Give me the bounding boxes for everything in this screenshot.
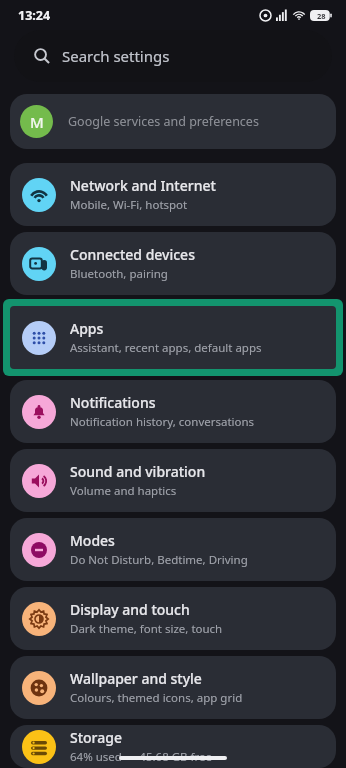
button[interactable]: Apps (10, 306, 336, 369)
staticText: Notification history, conversations (70, 414, 255, 430)
staticText: Sound and vibration (70, 462, 206, 481)
staticText: M (30, 112, 44, 132)
staticText: 28 (317, 11, 326, 21)
button[interactable]: Display and touch (10, 587, 336, 650)
button[interactable]: Modes (10, 518, 336, 581)
staticText: Modes (70, 531, 115, 550)
button[interactable]: Search settings (14, 30, 332, 82)
other: Apps (22, 321, 56, 355)
staticText: Apps (70, 319, 104, 338)
staticText: Storage (70, 728, 122, 747)
staticText: 13:24 (18, 7, 51, 24)
staticText: Volume and haptics (70, 483, 177, 499)
staticText: Display and touch (70, 600, 190, 619)
staticText: Dark theme, font size, touch (70, 621, 223, 637)
staticText: Notifications (70, 393, 156, 412)
button[interactable]: Wallpaper and style (10, 656, 336, 719)
staticText: Colours, themed icons, app grid (70, 690, 243, 706)
other: Sound and vibration (22, 464, 56, 498)
staticText: Bluetooth, pairing (70, 266, 168, 282)
staticText: 64% used — 45.68 GB free (70, 749, 213, 765)
staticText: Google services and preferences (68, 113, 259, 130)
staticText: Connected devices (70, 245, 195, 264)
button[interactable]: Notifications (10, 380, 336, 443)
button[interactable]: M (10, 94, 336, 149)
staticText: Do Not Disturb, Bedtime, Driving (70, 552, 248, 568)
button[interactable]: Network and Internet (10, 163, 336, 226)
staticText: Network and Internet (70, 176, 216, 195)
other: Display and touch (22, 602, 56, 636)
other: Modes (22, 533, 56, 567)
other: Network and Internet (22, 178, 56, 212)
other: Connected devices (22, 247, 56, 281)
staticText: Mobile, Wi-Fi, hotspot (70, 197, 188, 213)
other: Wallpaper and style (22, 671, 56, 705)
button[interactable]: Storage (10, 725, 336, 768)
staticText: Wallpaper and style (70, 669, 202, 688)
button[interactable]: Sound and vibration (10, 449, 336, 512)
button[interactable]: Connected devices (10, 232, 336, 295)
staticText: Assistant, recent apps, default apps (70, 340, 262, 356)
staticText: Search settings (62, 46, 170, 66)
other: Storage (22, 730, 56, 764)
other: Notifications (22, 395, 56, 429)
